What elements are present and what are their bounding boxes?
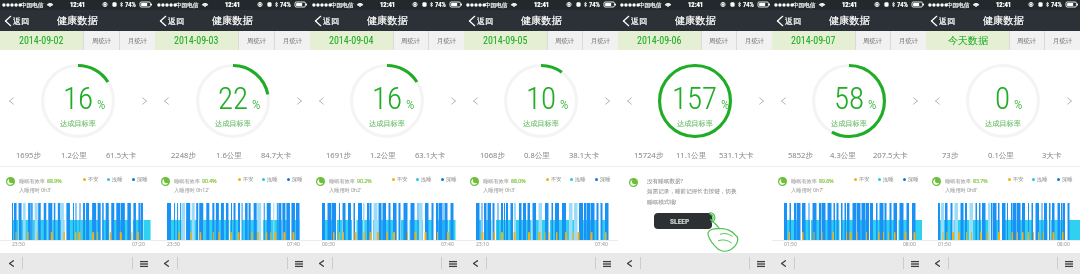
button[interactable]: 月统计 — [275, 31, 310, 50]
staticText: 07:40 — [287, 241, 300, 248]
button[interactable]: Menu — [750, 253, 772, 274]
staticText: 周统计 — [247, 37, 267, 45]
button[interactable]: Back — [464, 253, 486, 274]
button[interactable]: Menu — [133, 253, 155, 274]
button[interactable]: Previous day — [930, 94, 944, 108]
button[interactable]: Previous day — [776, 94, 790, 108]
button[interactable]: 月统计 — [891, 31, 926, 50]
button[interactable]: 返回 — [926, 16, 960, 26]
button[interactable]: Back — [310, 253, 332, 274]
button[interactable]: 月统计 — [429, 31, 464, 50]
staticText: SLEEP — [670, 217, 690, 226]
button[interactable]: 周统计 — [394, 31, 428, 50]
button[interactable]: Previous day — [4, 94, 18, 108]
button[interactable]: Back — [926, 253, 948, 274]
staticText: 2248步 — [171, 150, 196, 160]
button[interactable]: 周统计 — [702, 31, 736, 50]
button[interactable]: 返回 — [0, 16, 34, 26]
button[interactable]: Menu — [596, 253, 618, 274]
button[interactable]: 返回 — [155, 16, 189, 26]
button[interactable]: Back — [618, 253, 640, 274]
staticText: 90.4% — [202, 177, 217, 184]
staticText: 1.6公里 — [216, 150, 242, 160]
staticText: 1695步 — [16, 150, 41, 160]
button[interactable]: 月统计 — [120, 31, 155, 50]
button[interactable]: 2014-09-04 — [310, 31, 393, 50]
button[interactable]: Next day — [137, 94, 151, 108]
staticText: 1691步 — [326, 150, 351, 160]
staticText: 月统计 — [128, 37, 148, 45]
staticText: 2014-09-05 — [483, 35, 528, 47]
button[interactable]: Next day — [1062, 94, 1076, 108]
staticText: 月统计 — [437, 37, 457, 45]
staticText: 中国电信 — [176, 2, 199, 9]
button[interactable]: 2014-09-02 — [0, 31, 83, 50]
staticText: 22 — [218, 80, 249, 116]
staticText: 中国电信 — [21, 2, 44, 9]
staticText: 207.5大卡 — [873, 150, 908, 160]
staticText: 睡眠有效率 — [945, 177, 973, 184]
button[interactable]: 周统计 — [239, 31, 274, 50]
button[interactable]: 2014-09-07 — [772, 31, 855, 50]
staticText: 达成目标率 — [985, 119, 1021, 128]
button[interactable]: 周统计 — [84, 31, 119, 50]
button[interactable]: 2014-09-06 — [618, 31, 701, 50]
staticText: 返回 — [785, 16, 801, 26]
staticText: 深睡 — [292, 176, 303, 183]
staticText: 12:41 — [996, 1, 1012, 9]
staticText: 月统计 — [745, 37, 765, 45]
staticText: 中国电信 — [331, 2, 354, 9]
button[interactable]: Menu — [904, 253, 926, 274]
button[interactable]: Next day — [292, 94, 306, 108]
staticText: 38.1大卡 — [569, 150, 600, 160]
button[interactable]: 月统计 — [737, 31, 772, 50]
button[interactable]: Previous day — [159, 94, 173, 108]
button[interactable]: Menu — [1058, 253, 1080, 274]
staticText: 83.7% — [973, 177, 988, 184]
staticText: 中国电信 — [947, 2, 970, 9]
button[interactable]: 周统计 — [856, 31, 890, 50]
staticText: 月统计 — [283, 37, 303, 45]
staticText: 浅睡 — [1037, 176, 1048, 183]
staticText: 63.1大卡 — [415, 150, 446, 160]
button[interactable]: 返回 — [464, 16, 498, 26]
button[interactable]: 返回 — [310, 16, 344, 26]
button[interactable]: 周统计 — [1010, 31, 1044, 50]
button[interactable]: Next day — [600, 94, 614, 108]
staticText: 返回 — [939, 16, 955, 26]
staticText: 入睡用时 0h8' — [945, 186, 978, 193]
staticText: 23:50 — [12, 241, 25, 248]
button[interactable]: Previous day — [314, 94, 328, 108]
button[interactable]: Back — [0, 253, 22, 274]
staticText: 2014-09-03 — [174, 35, 219, 47]
staticText: 07:40 — [441, 241, 454, 248]
staticText: 浅睡 — [112, 176, 123, 183]
staticText: 睡眠有效率 — [791, 177, 819, 184]
button[interactable]: Menu — [288, 253, 310, 274]
button[interactable]: 周统计 — [548, 31, 582, 50]
staticText: 周统计 — [863, 37, 883, 45]
staticText: 深睡 — [600, 176, 611, 183]
staticText: 12:41 — [688, 1, 704, 9]
staticText: 08:00 — [1057, 241, 1070, 248]
staticText: 2014-09-06 — [637, 35, 682, 47]
staticText: 浅睡 — [421, 176, 432, 183]
button[interactable]: 月统计 — [1045, 31, 1080, 50]
button[interactable]: Back — [772, 253, 794, 274]
button[interactable]: Previous day — [468, 94, 482, 108]
staticText: 达成目标率 — [677, 119, 713, 128]
button[interactable]: 2014-09-05 — [464, 31, 547, 50]
button[interactable]: Next day — [446, 94, 460, 108]
button[interactable]: Previous day — [622, 94, 636, 108]
staticText: 睡眠有效率 — [19, 177, 47, 184]
staticText: 07:40 — [595, 241, 608, 248]
button[interactable]: Back — [155, 253, 177, 274]
button[interactable]: Menu — [442, 253, 464, 274]
button[interactable]: 返回 — [618, 16, 652, 26]
button[interactable]: Next day — [908, 94, 922, 108]
button[interactable]: 月统计 — [583, 31, 618, 50]
button[interactable]: 2014-09-03 — [155, 31, 238, 50]
button[interactable]: Next day — [754, 94, 768, 108]
button[interactable]: 返回 — [772, 16, 806, 26]
button[interactable]: 今天数据 — [926, 31, 1009, 50]
